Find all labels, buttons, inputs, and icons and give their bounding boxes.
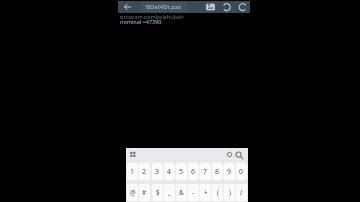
staticText: 4 — [167, 167, 172, 177]
staticText: + — [204, 188, 208, 197]
button[interactable] — [235, 151, 244, 160]
staticText: 9 — [227, 167, 232, 177]
button[interactable]: 7 — [200, 163, 211, 180]
staticText: $ — [156, 188, 160, 197]
button[interactable]: 8 — [212, 163, 223, 180]
staticText: & — [179, 188, 184, 197]
button[interactable]: 9 — [224, 163, 235, 180]
button[interactable]: 3 — [152, 163, 163, 180]
staticText: BDeI4Dt.pas — [146, 3, 182, 11]
button[interactable] — [121, 1, 135, 13]
staticText: 3 — [155, 167, 160, 177]
button[interactable]: 4 — [164, 163, 175, 180]
staticText: 6 — [191, 167, 196, 177]
button[interactable]: ( — [212, 184, 223, 201]
staticText: @ — [130, 188, 136, 197]
staticText: # — [142, 188, 147, 197]
staticText: ( — [217, 188, 219, 197]
staticText: 1 — [130, 167, 135, 177]
staticText: ) — [229, 188, 231, 197]
button[interactable]: 1 — [127, 163, 138, 180]
button[interactable] — [238, 3, 248, 11]
staticText: _ — [168, 188, 171, 197]
staticText: nominal =47390 — [120, 18, 162, 24]
button[interactable]: / — [236, 184, 247, 201]
staticText: 5 — [179, 167, 184, 177]
button[interactable]: - — [188, 184, 199, 201]
button[interactable]: ) — [224, 184, 235, 201]
button[interactable]: 0 — [236, 163, 247, 180]
staticText: - — [192, 188, 195, 197]
button[interactable] — [205, 3, 216, 11]
button[interactable]: & — [176, 184, 187, 201]
staticText: / — [240, 188, 243, 197]
button[interactable]: _ — [164, 184, 175, 201]
button[interactable] — [226, 151, 233, 158]
staticText: 7 — [203, 167, 208, 177]
button[interactable]: 2 — [139, 163, 150, 180]
button[interactable] — [129, 151, 138, 159]
button[interactable]: BDeI4Dt.pas — [141, 2, 187, 12]
staticText: 0 — [239, 167, 244, 177]
button[interactable]: # — [139, 184, 150, 201]
staticText: program pembolehubah — [120, 13, 184, 19]
staticText: 2 — [142, 167, 147, 177]
button[interactable]: $ — [152, 184, 163, 201]
button[interactable]: 5 — [176, 163, 187, 180]
button[interactable] — [222, 3, 232, 11]
button[interactable]: @ — [127, 184, 138, 201]
staticText: 8 — [215, 167, 220, 177]
button[interactable]: 6 — [188, 163, 199, 180]
button[interactable]: + — [200, 184, 211, 201]
